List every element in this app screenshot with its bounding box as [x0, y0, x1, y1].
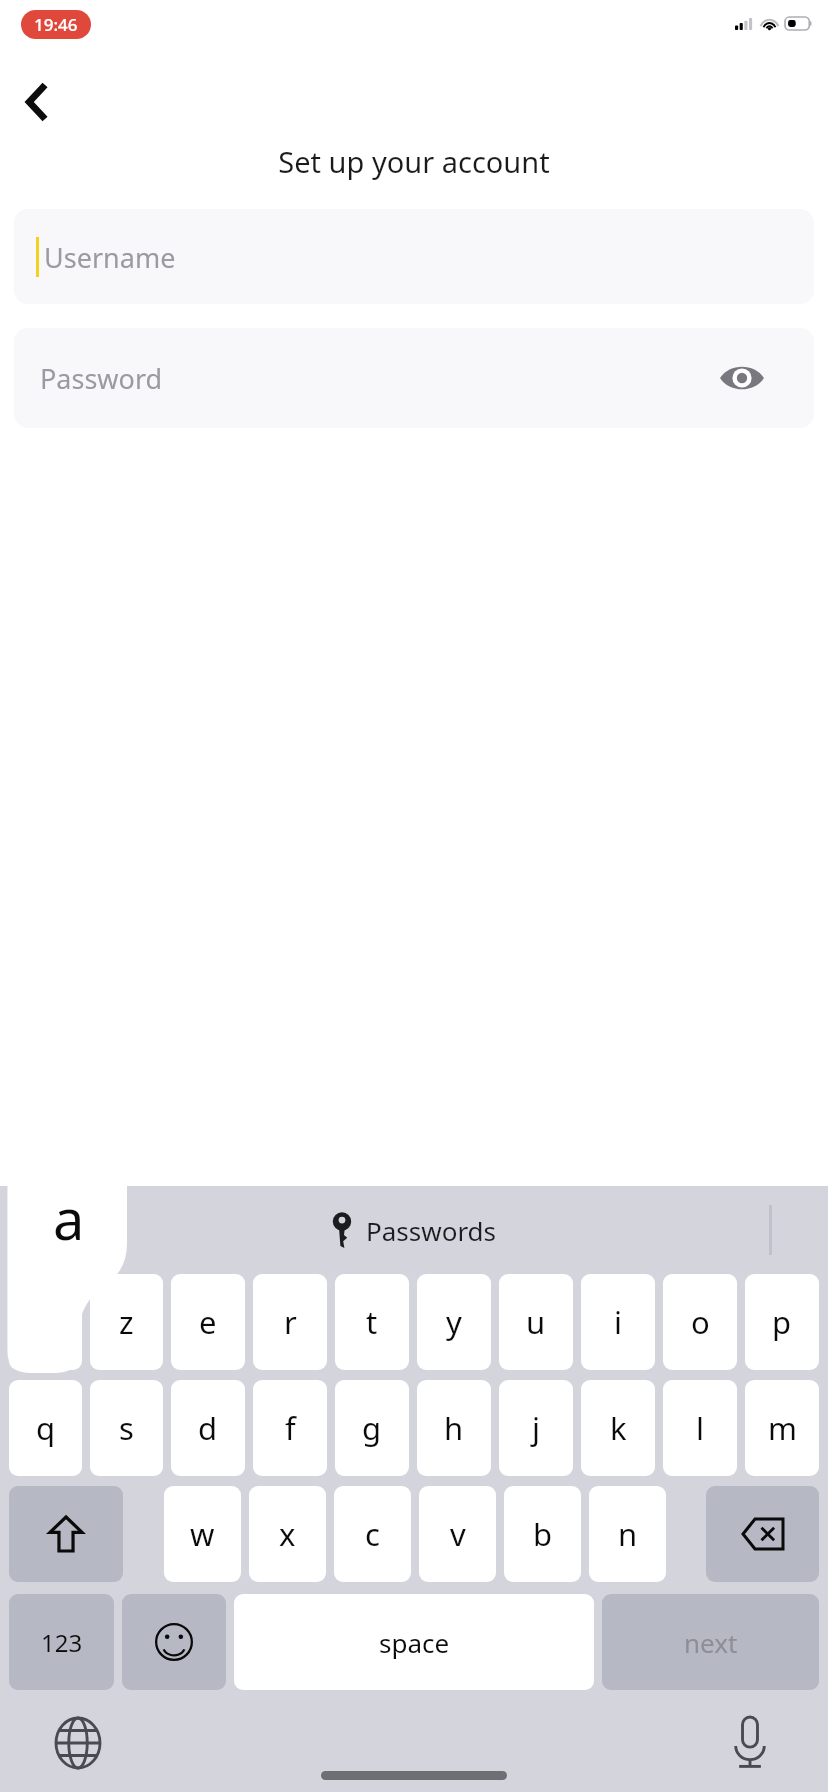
button[interactable]: l — [663, 1380, 737, 1476]
button[interactable]: Back — [10, 74, 66, 130]
staticText: a — [53, 1180, 85, 1256]
staticText: t — [366, 1301, 378, 1343]
staticText: f — [285, 1407, 296, 1449]
button[interactable]: i — [581, 1274, 655, 1370]
button[interactable]: p — [745, 1274, 819, 1370]
button[interactable]: r — [253, 1274, 327, 1370]
staticText: d — [198, 1407, 218, 1449]
button[interactable]: Dictate — [722, 1715, 778, 1771]
button[interactable]: next — [602, 1594, 819, 1690]
staticText: n — [618, 1513, 638, 1555]
staticText: y — [446, 1301, 462, 1343]
button[interactable]: Password — [14, 328, 814, 428]
staticText: r — [284, 1301, 297, 1343]
button[interactable]: k — [581, 1380, 655, 1476]
button[interactable]: u — [499, 1274, 573, 1370]
staticText: Passwords — [366, 1213, 497, 1248]
button[interactable]: b — [504, 1486, 581, 1582]
button[interactable]: Shift — [9, 1486, 123, 1582]
staticText: 123 — [41, 1626, 83, 1659]
button[interactable]: j — [499, 1380, 573, 1476]
staticText: c — [365, 1513, 380, 1555]
button[interactable]: m — [745, 1380, 819, 1476]
staticText: o — [691, 1301, 710, 1343]
button[interactable]: n — [589, 1486, 666, 1582]
button[interactable]: Change keyboard language — [50, 1715, 106, 1771]
staticText: x — [279, 1513, 296, 1555]
button[interactable]: v — [419, 1486, 496, 1582]
button[interactable]: Username — [14, 209, 814, 304]
staticText: h — [444, 1407, 464, 1449]
button[interactable]: s — [90, 1380, 163, 1476]
button[interactable]: w — [164, 1486, 241, 1582]
staticText: w — [190, 1513, 215, 1555]
staticText: k — [610, 1407, 627, 1449]
button[interactable]: c — [334, 1486, 411, 1582]
button[interactable]: Show password — [716, 352, 768, 404]
button[interactable]: y — [417, 1274, 491, 1370]
staticText: q — [36, 1407, 56, 1449]
staticText: j — [532, 1407, 540, 1449]
button[interactable]: Passwords — [332, 1213, 497, 1248]
staticText: next — [684, 1625, 738, 1660]
button[interactable]: f — [253, 1380, 327, 1476]
button[interactable]: space — [234, 1594, 594, 1690]
staticText: l — [696, 1407, 704, 1449]
button[interactable]: z — [90, 1274, 163, 1370]
staticText: g — [362, 1407, 382, 1449]
staticText: z — [119, 1301, 134, 1343]
staticText: 19:46 — [34, 13, 78, 36]
button[interactable]: o — [663, 1274, 737, 1370]
staticText: e — [199, 1301, 217, 1343]
button[interactable]: Emoji — [122, 1594, 226, 1690]
staticText: Set up your account — [0, 142, 828, 181]
staticText: v — [450, 1513, 466, 1555]
button[interactable]: h — [417, 1380, 491, 1476]
button[interactable]: e — [171, 1274, 245, 1370]
button[interactable]: t — [335, 1274, 409, 1370]
button[interactable]: x — [249, 1486, 326, 1582]
staticText: Username — [44, 239, 176, 276]
button[interactable]: g — [335, 1380, 409, 1476]
staticText: Password — [40, 360, 163, 397]
button[interactable]: d — [171, 1380, 245, 1476]
button[interactable]: q — [9, 1380, 82, 1476]
staticText: m — [768, 1407, 797, 1449]
button[interactable]: 123 — [9, 1594, 114, 1690]
button[interactable]: Backspace — [706, 1486, 819, 1582]
staticText: space — [379, 1625, 450, 1660]
staticText: i — [614, 1301, 622, 1343]
staticText: b — [533, 1513, 553, 1555]
button[interactable]: a — [9, 1274, 82, 1370]
staticText: u — [526, 1301, 546, 1343]
staticText: s — [119, 1407, 134, 1449]
staticText: p — [772, 1301, 792, 1343]
